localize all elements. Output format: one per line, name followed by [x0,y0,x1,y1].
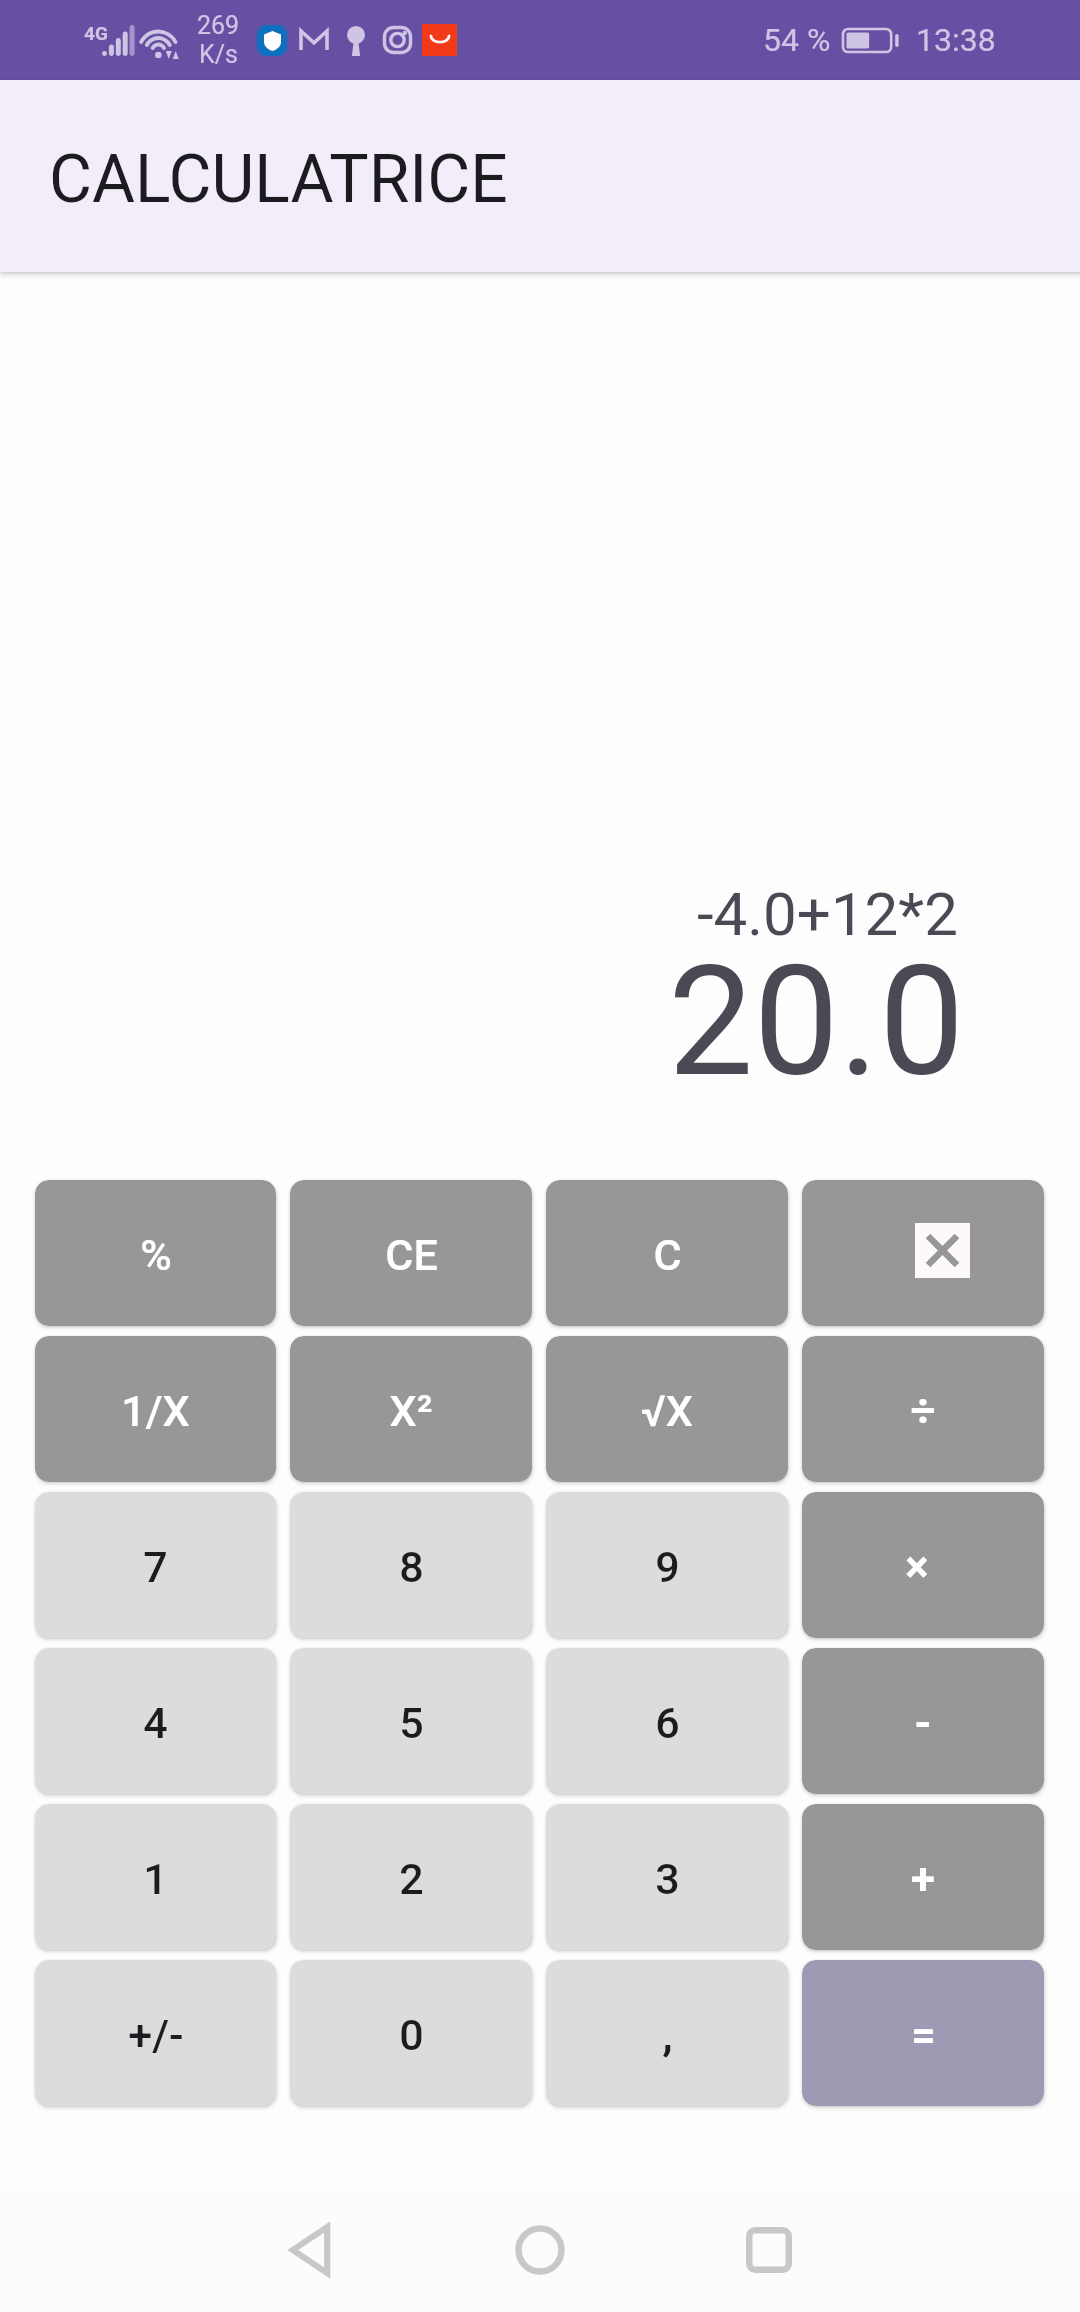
button[interactable]: 2 [290,1804,532,1950]
staticText: , [662,2010,673,2060]
staticText: CE [385,1230,438,1280]
staticText: 1 [143,1854,168,1904]
button[interactable]: 4 [35,1648,276,1794]
staticText: C [653,1230,682,1280]
button[interactable]: - [802,1648,1044,1794]
button[interactable]: 6 [546,1648,788,1794]
button[interactable]: Recent apps [709,2190,829,2310]
button[interactable]: Back [250,2190,370,2310]
button[interactable]: , [546,1960,788,2106]
button[interactable]: 1 [35,1804,276,1950]
staticText: √X [641,1386,693,1436]
button[interactable]: 5 [290,1648,532,1794]
staticText: K/s [199,40,238,69]
staticText: 54 % [763,21,831,59]
button[interactable]: C [546,1180,788,1326]
staticText: 1/X [121,1386,190,1436]
staticText: 4 [143,1698,168,1748]
staticText: 8 [399,1542,424,1592]
button[interactable]: 1/X [35,1336,276,1482]
staticText: % [140,1230,172,1280]
staticText: 2 [399,1854,424,1904]
button[interactable]: 8 [290,1492,532,1638]
staticText: 4G [84,22,108,44]
staticText: + [911,1853,935,1905]
button[interactable]: = [802,1960,1044,2106]
staticText: × [905,1541,929,1593]
staticText: 7 [143,1542,168,1592]
button[interactable]: √X [546,1336,788,1482]
button[interactable]: +/- [35,1960,276,2106]
staticText: -4.0+12*2 [697,879,958,949]
button[interactable]: 0 [290,1960,532,2106]
button[interactable]: × [802,1492,1044,1638]
button[interactable]: 9 [546,1492,788,1638]
button[interactable]: CE [290,1180,532,1326]
button[interactable]: ÷ [802,1336,1044,1482]
staticText: X² [389,1386,433,1436]
staticText: - [914,1697,932,1749]
staticText: CALCULATRICE [49,141,508,218]
staticText: 9 [655,1542,680,1592]
staticText: +/- [128,2010,184,2060]
staticText: 3 [655,1854,680,1904]
staticText: 5 [399,1698,424,1748]
staticText: ÷ [910,1385,936,1437]
button[interactable]: 7 [35,1492,276,1638]
staticText: 20.0 [668,933,965,1111]
staticText: 6 [655,1698,680,1748]
button[interactable]: X² [290,1336,532,1482]
staticText: 13:38 [916,21,996,59]
button[interactable]: + [802,1804,1044,1950]
button[interactable]: Home [480,2190,600,2310]
staticText: 269 [197,11,240,40]
button[interactable]: 3 [546,1804,788,1950]
button[interactable]: % [35,1180,276,1326]
button[interactable]: Delete [802,1180,1044,1326]
staticText: = [911,2010,936,2060]
staticText: 0 [399,2010,424,2060]
